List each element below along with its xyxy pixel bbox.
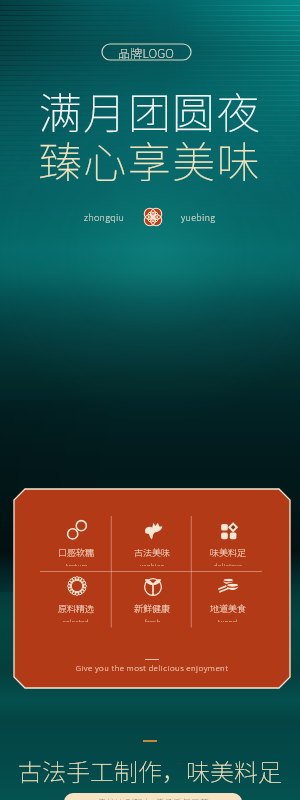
staticText: 传统比例配方 传承千年工艺 [97, 796, 209, 800]
button[interactable]: 传统比例配方 传承千年工艺 [64, 793, 242, 800]
staticText: 口感软糯 [58, 546, 95, 559]
staticText: yuebing [181, 211, 216, 224]
staticText: yanbian [140, 561, 165, 566]
staticText: 地道美食 [210, 602, 247, 615]
staticText: zhongqiu [84, 211, 125, 224]
staticText: fresh [145, 617, 161, 622]
button[interactable]: 新鲜健康 [114, 570, 190, 622]
staticText: delicious [214, 561, 243, 566]
staticText: 味美料足 [210, 546, 247, 559]
button[interactable]: 原料精选 [38, 570, 114, 622]
staticText: 原料精选 [58, 602, 95, 615]
staticText: tunnel [218, 617, 239, 622]
staticText: 古法手工制作，味美料足 [0, 753, 300, 788]
staticText: selected [63, 617, 90, 622]
staticText: 古法美味 [134, 546, 171, 559]
button[interactable]: 品牌LOGO [102, 44, 191, 60]
staticText: Give you the most delicious enjoyment [14, 662, 290, 674]
button[interactable]: 口感软糯 [38, 514, 114, 566]
staticText: 新鲜健康 [134, 602, 171, 615]
staticText: texture [66, 561, 88, 566]
staticText: 满月团圆夜 [0, 79, 300, 141]
button[interactable]: 味美料足 [190, 514, 266, 566]
button[interactable]: 地道美食 [190, 570, 266, 622]
button[interactable]: 古法美味 [114, 514, 190, 566]
staticText: 品牌LOGO [118, 44, 175, 60]
staticText: 臻心享美味 [0, 128, 300, 190]
